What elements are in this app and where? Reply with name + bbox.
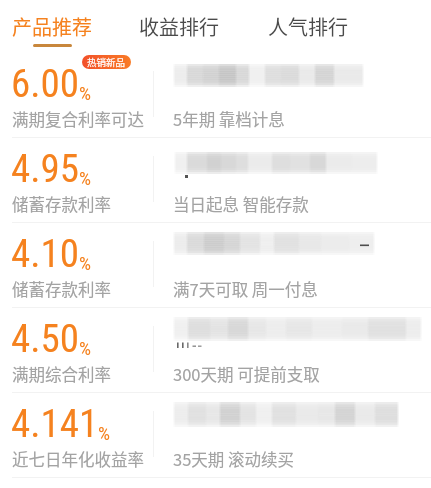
staticText: 满期综合利率 xyxy=(12,362,111,386)
staticText: 近七日年化收益率 xyxy=(12,447,144,471)
staticText: 人气排行 xyxy=(268,12,348,41)
button[interactable]: 人气排行 xyxy=(268,12,348,44)
staticText: 储蓄存款利率 xyxy=(12,192,111,216)
staticText: 4.95 xyxy=(11,146,80,192)
staticText: 5年期 靠档计息 xyxy=(173,107,285,131)
staticText: 储蓄存款利率 xyxy=(12,277,111,301)
button[interactable]: 4.50 xyxy=(0,308,431,393)
staticText: % xyxy=(79,82,92,104)
staticText: 4.50 xyxy=(11,316,80,362)
staticText: % xyxy=(79,167,92,189)
button[interactable]: 4.10 xyxy=(0,223,431,308)
staticText: 4.141 xyxy=(11,401,99,447)
staticText: 35天期 滚动续买 xyxy=(173,447,295,471)
staticText: % xyxy=(79,337,92,359)
staticText: 300天期 可提前支取 xyxy=(173,362,320,386)
button[interactable]: 6.00 xyxy=(0,53,431,138)
staticText: 当日起息 智能存款 xyxy=(173,192,309,216)
staticText: % xyxy=(79,252,92,274)
staticText: % xyxy=(98,422,111,444)
staticText: 满期复合利率可达 xyxy=(12,107,144,131)
staticText: 4.10 xyxy=(11,231,80,277)
button[interactable]: 4.141 xyxy=(0,393,431,478)
button[interactable]: 产品推荐 xyxy=(12,12,92,47)
staticText: 6.00 xyxy=(11,61,80,107)
button[interactable]: 收益排行 xyxy=(139,12,219,44)
button[interactable]: 4.95 xyxy=(0,138,431,223)
staticText: 收益排行 xyxy=(139,12,219,41)
staticText: 满7天可取 周一付息 xyxy=(173,277,318,301)
staticText: 热销新品 xyxy=(87,55,126,69)
staticText: 产品推荐 xyxy=(12,12,92,41)
